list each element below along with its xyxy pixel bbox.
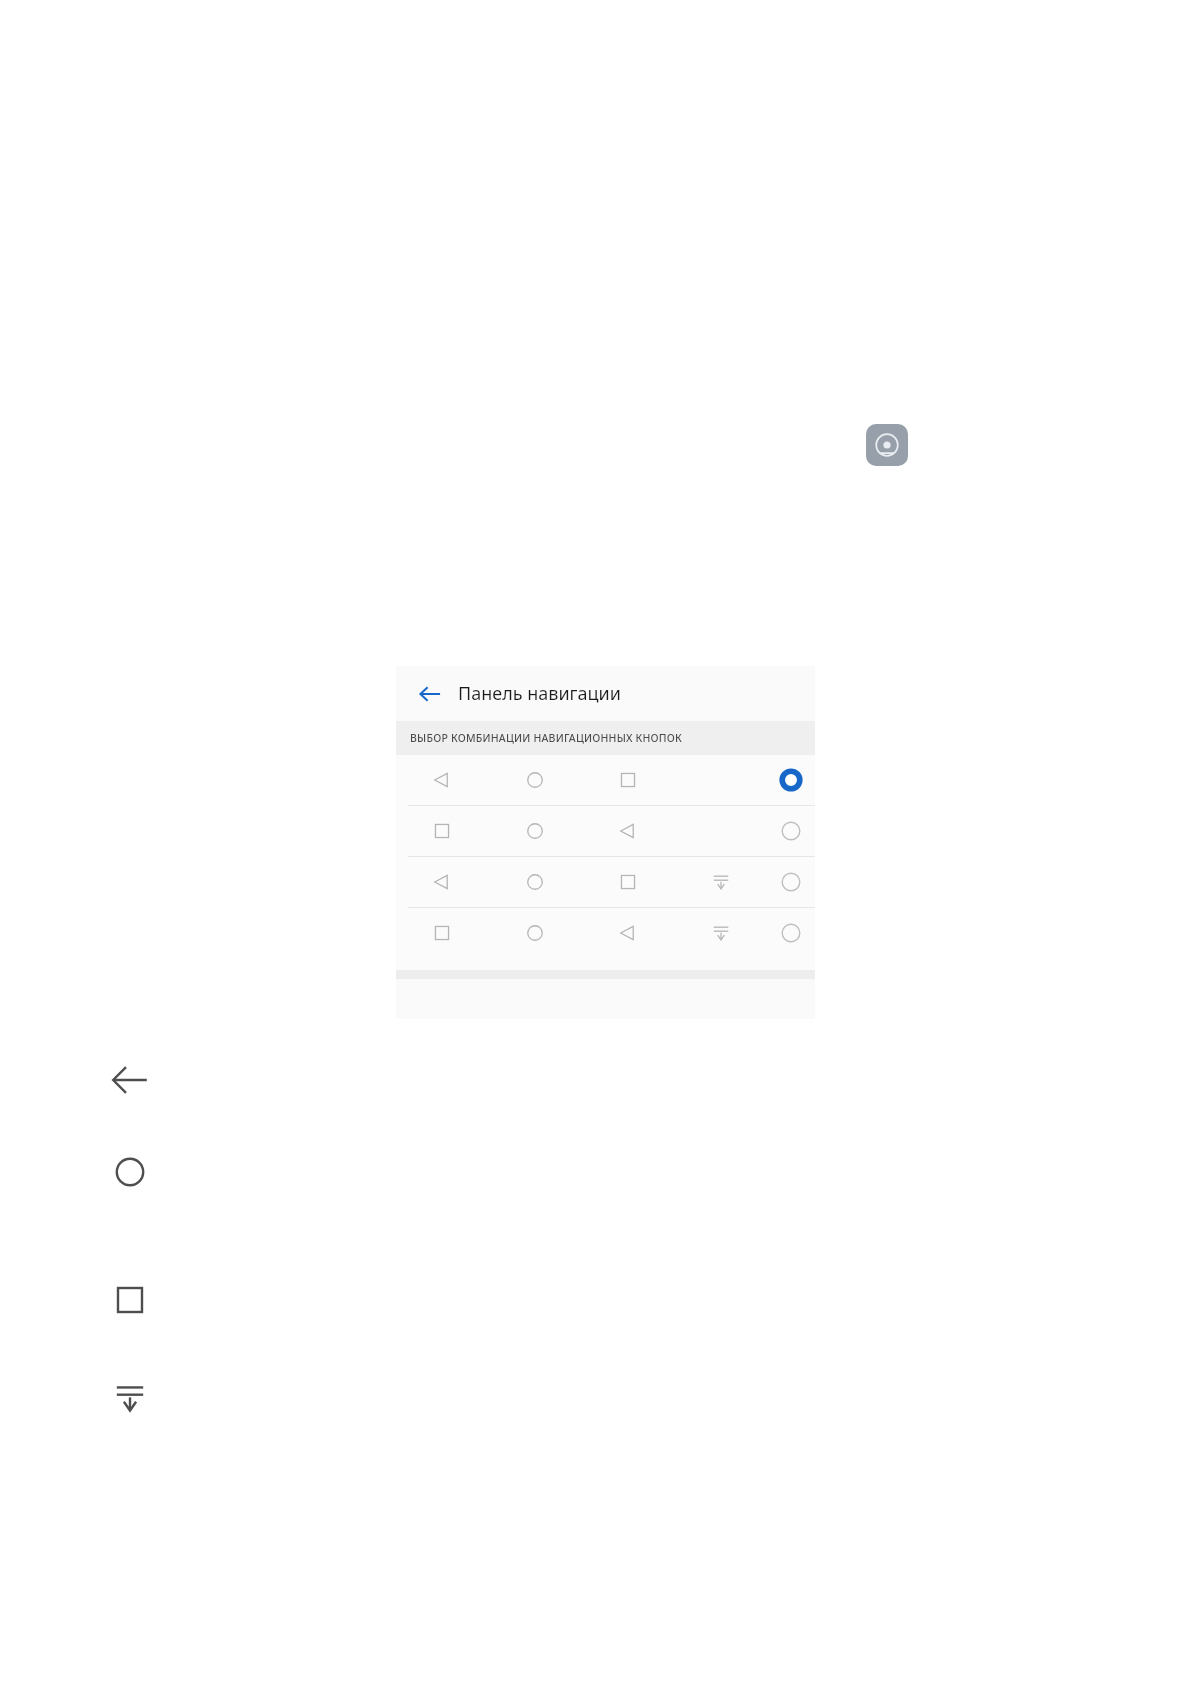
button[interactable]: Recents bbox=[104, 1274, 156, 1326]
button[interactable]: Hide navigation bar bbox=[104, 1372, 156, 1424]
button[interactable]: Navigation key combination option bbox=[396, 857, 815, 907]
button[interactable]: App icon bbox=[866, 424, 908, 466]
button[interactable]: Back bbox=[104, 1054, 156, 1106]
button[interactable]: Navigation key combination option bbox=[396, 755, 815, 805]
button[interactable]: Navigation key combination option bbox=[396, 908, 815, 958]
button[interactable]: Navigation key combination option bbox=[396, 806, 815, 856]
button[interactable]: Home bbox=[104, 1146, 156, 1198]
staticText: ВЫБОР КОМБИНАЦИИ НАВИГАЦИОННЫХ КНОПОК bbox=[410, 731, 683, 745]
button[interactable]: Back bbox=[415, 679, 445, 709]
staticText: Панель навигации bbox=[458, 681, 621, 706]
